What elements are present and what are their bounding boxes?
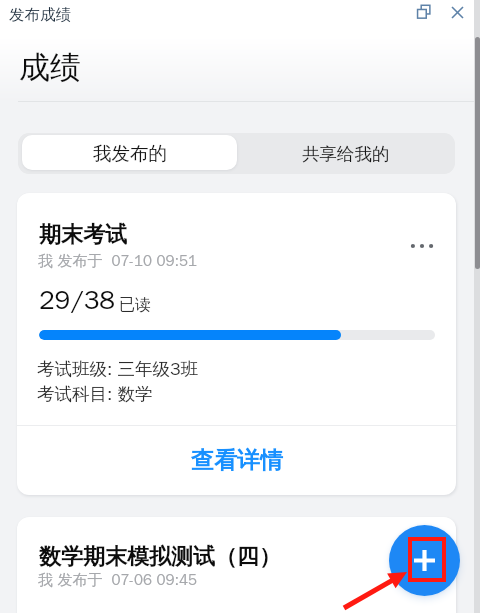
staticText: 共享给我的: [302, 143, 390, 165]
staticText: 已读: [119, 295, 151, 315]
button[interactable]: Add: [389, 525, 460, 596]
staticText: 考试班级: 三年级3班: [37, 358, 198, 380]
button[interactable]: 共享给我的: [237, 133, 455, 174]
staticText: 考试科目: 数学: [37, 383, 153, 405]
button[interactable]: 查看详情: [17, 426, 456, 495]
staticText: 我发布的: [93, 142, 167, 165]
staticText: 查看详情: [191, 446, 283, 475]
staticText: 我 发布于 07-10 09:51: [38, 252, 197, 271]
button[interactable]: More options: [402, 226, 442, 266]
staticText: 期末考试: [39, 221, 127, 249]
button[interactable]: 我发布的: [22, 135, 237, 170]
button[interactable]: Close window: [444, 0, 470, 24]
staticText: 29/38: [39, 284, 115, 317]
button[interactable]: Restore window: [411, 0, 437, 24]
staticText: 发布成绩: [9, 5, 71, 25]
staticText: 数学期末模拟测试（四）: [39, 543, 281, 571]
staticText: 成绩: [19, 48, 81, 87]
staticText: 我 发布于 07-06 09:45: [38, 571, 197, 590]
